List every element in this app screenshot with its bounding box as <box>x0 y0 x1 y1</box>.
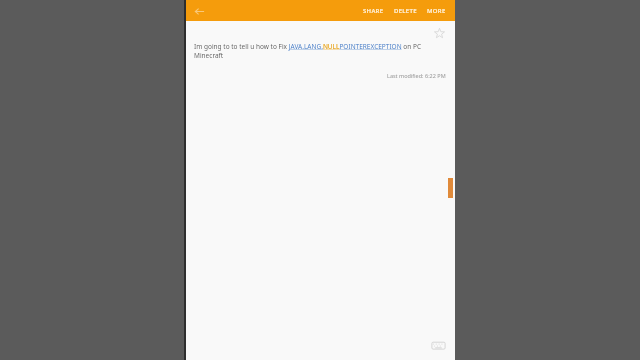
button[interactable]: Back <box>190 2 208 20</box>
staticText: Im going to to tell u how to Fix JAVA.LA… <box>194 42 445 60</box>
button[interactable]: SHARE <box>358 4 389 18</box>
staticText: Last modified: 6:22 PM <box>387 72 446 79</box>
button[interactable]: Favourite <box>431 25 447 41</box>
button[interactable]: Keyboard <box>427 334 449 356</box>
staticText: MORE <box>427 7 446 15</box>
staticText: SHARE <box>363 7 384 15</box>
button[interactable]: MORE <box>422 4 451 18</box>
staticText: DELETE <box>394 7 417 15</box>
button[interactable]: DELETE <box>389 4 422 18</box>
